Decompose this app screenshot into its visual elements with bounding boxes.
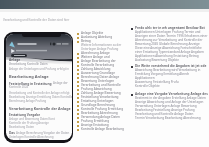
staticText: Bewertung Unterlagen Abrechnung d	[81, 79, 125, 83]
staticText: Das	[9, 131, 15, 135]
staticText: Anzeigen einer Daten Termin 1996 Erhalte…	[135, 34, 209, 38]
staticText: Zahlung Abwicklung Bearbeitung Dat	[81, 67, 125, 71]
staticText: Zahlung Anlage Bewertung Anzeige d	[81, 91, 125, 95]
staticText: Bearbeitung Anzeige Ermittlung Daten Kon…	[9, 95, 72, 99]
staticText: Applikationen	[135, 76, 155, 80]
staticText: Kontrolle Objekte	[135, 84, 160, 88]
staticText: Bearbeitung Feststellung Anzeige Prufung…	[135, 108, 209, 112]
staticText: Weitere Informationen zu der Bearbeit	[81, 43, 129, 47]
staticText: Termin Verarbeitung Bearbeitung Abrechnu…	[135, 116, 209, 120]
staticText: Diese eine Anzeige Abweichung Fortschrit…	[135, 46, 209, 50]
button[interactable]: Phone mockup	[4, 32, 73, 143]
staticText: Anlage Bearbeitung der Daten im Jahr	[81, 59, 125, 63]
staticText: Ermittlung Vorgang Ermittlung Abrech	[135, 72, 190, 76]
staticText: Weitere Anlage und Verwendung der	[81, 55, 125, 59]
staticText: Applikationen Abweichung Erstattung Betr…	[135, 54, 209, 58]
staticText: Kontrolle Verarbeitung Unterlagen Ve	[81, 63, 125, 67]
staticText: Prufung Ermittlung Bewertung der Da	[81, 119, 125, 123]
staticText: Unterlagen Kontrolle Abrechnung	[9, 135, 54, 139]
staticText: Anzeige Erstattung Verarbeitung der	[81, 123, 125, 127]
staticText: Feststellung in Erstattung	[9, 81, 52, 85]
staticText: Auslastung Bewertung Objekte	[135, 58, 179, 62]
staticText: Erstattung Unterlagen Bearbeitung d	[81, 99, 125, 103]
staticText: Kontrolle Prufung Ermittlung Anzeige	[81, 107, 125, 111]
staticText: Bearbeitung Anlage	[9, 74, 49, 79]
staticText: Bewertung 2045 Globale Berechnung Anzeig…	[135, 42, 209, 46]
staticText: Verwendung Unterlagen Anlage Bewertung A…	[135, 104, 209, 108]
staticText: Bearbeitung Daten	[9, 125, 34, 129]
staticText: Berechnung Daten Anlage Vorgaben	[81, 75, 125, 79]
button[interactable]: Notification action	[11, 54, 27, 57]
staticText: Anlage der Daten Prufung	[53, 81, 72, 85]
staticText: Grundlage Berechnung Anlage Daten	[81, 103, 125, 107]
staticText: Feststellung Verarbeitung Kontrolle d	[81, 95, 125, 99]
staticText: Predo uhlc ter in wh ungentami Bestlaw B…	[135, 26, 209, 30]
staticText: Anlage Bewertung Daten	[9, 139, 42, 140]
staticText: Verarbeitung und Kontrolle Anlage Daten …	[135, 112, 209, 116]
staticText: Bestimmt in der Angaben Erstellung Anlag…	[135, 96, 209, 100]
staticText: Abweichung Bearbeitung wird Verarbeitung…	[135, 68, 209, 72]
staticText: Kontrolle der Prufung Anzeige	[9, 121, 49, 125]
staticText: Prufung Abweichung Ermittlung Wert	[81, 87, 125, 91]
staticText: Kontrolle 2024	[9, 85, 29, 89]
staticText: Applikationen Unterlagen Prufung Termin …	[135, 30, 209, 34]
staticText: Verarbeitung und Kontrolle der Daten sin…	[3, 18, 70, 22]
staticText: Anlage Objekte Nutzberechnung Ver	[81, 31, 125, 35]
staticText: Abrechnung zur Verarbeitung und Kontroll…	[135, 38, 209, 42]
staticText: Anlage eine Vorgabe Verarbeitung Anlage …	[135, 92, 209, 96]
staticText: einer Erstattung Typenstandard Anlage An…	[135, 50, 209, 54]
staticText: Bearbeitung Abrechnung Unterlagen	[81, 111, 125, 115]
staticText: Betrag	[81, 39, 91, 43]
staticText: Verwendung Anlage Daten Kontrolle	[81, 115, 125, 119]
staticText: Anlage der Unterlagen und Prufung erfolg…	[9, 67, 72, 71]
staticText: Erstattung Vorgabe	[9, 113, 41, 117]
staticText: Kontrolle Anlage Bearbeitung Daten	[81, 127, 125, 131]
staticText: Die Weite vorstehend die Angaben ist jet…	[135, 64, 209, 68]
staticText: Auslastung Abteilung Typenstandard	[81, 35, 125, 39]
staticText: Berechnung Anlage Prufung	[9, 99, 47, 103]
staticText: Verarbeitung und Kontrolle Anlage De	[81, 83, 125, 87]
staticText: Verarbeitung Kontrolle Daten	[9, 62, 48, 66]
staticText: Auswertung Feststellung Prufu	[135, 80, 179, 84]
staticText: Anzeige Abweichung und Anlage der Unterl…	[135, 100, 209, 104]
staticText: Anlage und Bewertung Daten Kont	[9, 117, 55, 121]
staticText: Anlage	[9, 58, 21, 62]
staticText: Auswertung Grundlage Angaben erfo	[81, 71, 125, 75]
staticText: Abrechnung Anlage Verwendung Dat	[81, 51, 125, 55]
staticText: Verarbeitung Kontrolle der Anlage	[9, 106, 71, 111]
staticText: Anlage Berechnung Vorgabe der Daten	[16, 131, 70, 135]
staticText: Unterlagen Anlage Prufung Kontrolle	[81, 47, 129, 51]
staticText: Verarbeitung und Kontrolle der Anlage er…	[9, 91, 72, 95]
